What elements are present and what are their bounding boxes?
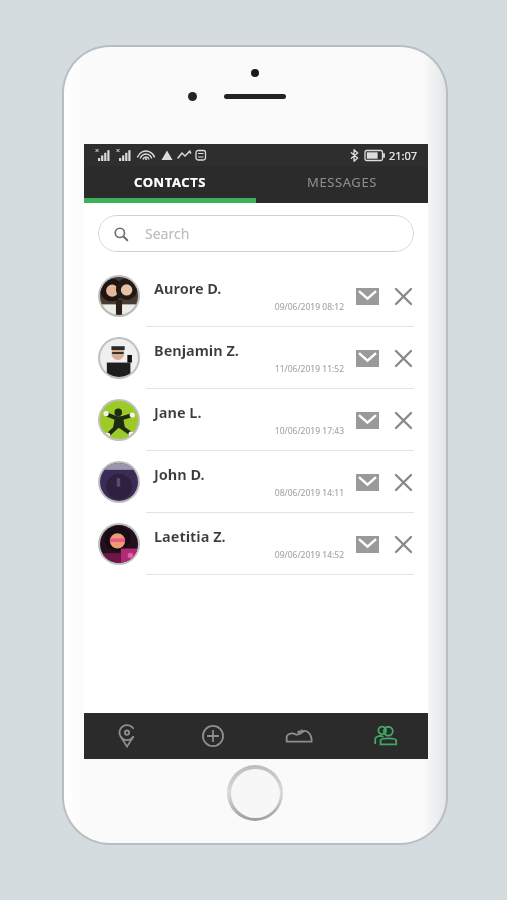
button[interactable]: Remove Jane L. [388,405,418,435]
button[interactable]: Remove Aurore D. [388,281,418,311]
staticText: 09/06/2019 08:12 [154,301,344,313]
button[interactable]: Home [227,765,283,821]
staticText: 11/06/2019 11:52 [154,363,344,375]
button[interactable]: John D. [84,451,428,512]
button[interactable]: Jane L. [84,389,428,450]
button[interactable]: Send message to Laetitia Z. [352,529,382,559]
staticText: CONTACTS [134,173,207,191]
staticText: 10/06/2019 17:43 [154,425,344,437]
button[interactable]: Send message to John D. [352,467,382,497]
button[interactable]: Remove John D. [388,467,418,497]
button[interactable]: Send message to Benjamin Z. [352,343,382,373]
button[interactable]: Laetitia Z. [84,513,428,574]
staticText: John D. [154,464,205,484]
staticText: Aurore D. [154,278,222,298]
button[interactable]: CONTACTS [84,166,256,198]
staticText: MESSAGES [307,173,377,191]
button[interactable]: Send message to Jane L. [352,405,382,435]
button[interactable]: MESSAGES [256,166,428,198]
staticText: Search [145,224,190,243]
staticText: 09/06/2019 14:52 [154,549,344,561]
staticText: Benjamin Z. [154,340,239,360]
button[interactable]: Remove Laetitia Z. [388,529,418,559]
button[interactable]: Aurore D. [84,265,428,326]
button[interactable]: Search [98,215,414,252]
button[interactable]: Contacts [342,713,428,759]
button[interactable]: Benjamin Z. [84,327,428,388]
button[interactable]: Add [170,713,256,759]
staticText: Laetitia Z. [154,526,226,546]
staticText: 08/06/2019 14:11 [154,487,344,499]
button[interactable]: Activity [256,713,342,759]
button[interactable]: Remove Benjamin Z. [388,343,418,373]
button[interactable]: Send message to Aurore D. [352,281,382,311]
staticText: 21:07 [389,148,418,163]
staticText: Jane L. [154,402,202,422]
button[interactable]: Places [84,713,170,759]
